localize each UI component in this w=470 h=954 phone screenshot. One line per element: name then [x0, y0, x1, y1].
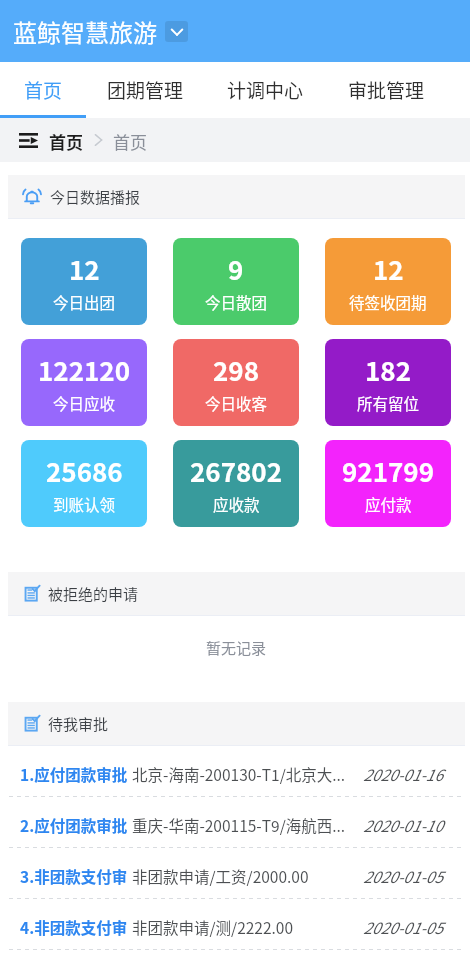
staticText: 2.应付团款审批	[20, 814, 128, 836]
staticText: 今日数据播报	[50, 186, 141, 208]
staticText: 122120	[38, 351, 131, 389]
staticText: 今日应收	[53, 392, 116, 414]
button[interactable]: 计调中心	[205, 62, 325, 118]
button[interactable]: 921799	[325, 440, 451, 527]
staticText: 3.非团款支付审	[20, 865, 128, 887]
staticText: 12	[69, 250, 100, 288]
staticText: 2020-01-05	[363, 916, 443, 938]
staticText: 待签收团期	[349, 291, 427, 313]
staticText: 182	[365, 351, 412, 389]
staticText: 2020-01-05	[363, 865, 443, 887]
staticText: 应收款	[213, 493, 260, 515]
staticText: 今日散团	[205, 291, 268, 313]
staticText: 蓝鲸智慧旅游	[13, 14, 157, 49]
staticText: 团期管理	[107, 76, 184, 104]
staticText: 非团款申请/工资/2000.00	[132, 865, 357, 887]
staticText: 暂无记录	[206, 637, 267, 659]
button[interactable]: 4.非团款支付审	[8, 899, 465, 949]
staticText: 1.应付团款审批	[20, 763, 128, 785]
staticText: 2020-01-10	[363, 814, 443, 836]
button[interactable]: 2.应付团款审批	[8, 797, 465, 847]
staticText: 921799	[342, 452, 435, 490]
staticText: 到账认领	[53, 493, 116, 515]
button[interactable]: Expand menu	[165, 21, 188, 42]
staticText: 非团款申请/测/2222.00	[132, 916, 357, 938]
staticText: 首页	[49, 129, 83, 154]
staticText: 298	[213, 351, 260, 389]
staticText: 今日收客	[205, 392, 268, 414]
staticText: 计调中心	[227, 76, 304, 104]
staticText: 267802	[190, 452, 283, 490]
button[interactable]: 3.非团款支付审	[8, 848, 465, 898]
button[interactable]: 182	[325, 339, 451, 426]
staticText: 12	[373, 250, 404, 288]
button[interactable]: 122120	[21, 339, 147, 426]
button[interactable]: 团期管理	[86, 62, 205, 118]
button[interactable]: 298	[173, 339, 299, 426]
staticText: 25686	[46, 452, 123, 490]
staticText: 被拒绝的申请	[48, 583, 139, 605]
staticText: 应付款	[365, 493, 412, 515]
button[interactable]: 1.应付团款审批	[8, 746, 465, 796]
button[interactable]: 9	[173, 238, 299, 325]
staticText: 首页	[113, 129, 147, 154]
button[interactable]: Toggle menu	[17, 131, 40, 150]
button[interactable]: 267802	[173, 440, 299, 527]
staticText: 北京-海南-200130-T1/北京大...	[132, 763, 357, 785]
button[interactable]: 首页	[0, 62, 86, 118]
button[interactable]: 12	[325, 238, 451, 325]
staticText: 审批管理	[348, 76, 425, 104]
staticText: 待我审批	[48, 713, 109, 735]
staticText: 首页	[24, 76, 63, 104]
button[interactable]: 25686	[21, 440, 147, 527]
staticText: 9	[228, 250, 244, 288]
button[interactable]: 审批管理	[325, 62, 447, 118]
staticText: 今日出团	[53, 291, 116, 313]
staticText: 4.非团款支付审	[20, 916, 128, 938]
staticText: 所有留位	[357, 392, 420, 414]
staticText: 2020-01-16	[363, 763, 443, 785]
staticText: 重庆-华南-200115-T9/海航西...	[132, 814, 357, 836]
button[interactable]: 12	[21, 238, 147, 325]
